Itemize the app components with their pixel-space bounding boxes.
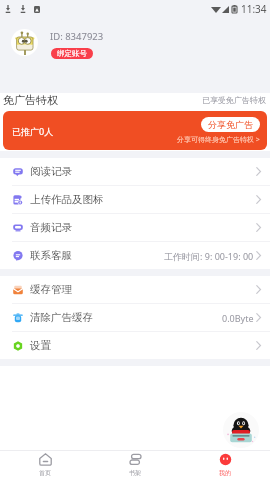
- button[interactable]: 阅读记录: [0, 158, 270, 185]
- button[interactable]: 已推广0人: [3, 111, 267, 150]
- staticText: 分享可得终身免广告特权 >: [177, 135, 260, 145]
- staticText: 0.0Byte: [222, 312, 254, 324]
- staticText: 设置: [30, 339, 51, 352]
- button[interactable]: 上传作品及图标: [0, 186, 270, 213]
- button[interactable]: 分享免广告: [201, 117, 260, 132]
- staticText: 工作时间: 9: 00-19: 00: [164, 250, 254, 262]
- button[interactable]: QQ 客服: [223, 412, 259, 448]
- staticText: 免广告特权: [3, 93, 58, 106]
- staticText: 已享受免广告特权: [202, 95, 266, 105]
- button[interactable]: 首页: [0, 450, 90, 480]
- staticText: 音频记录: [30, 221, 72, 234]
- staticText: 已推广0人: [12, 125, 54, 137]
- staticText: 书架: [129, 469, 141, 477]
- button[interactable]: 绑定账号: [51, 48, 93, 59]
- staticText: 分享免广告: [208, 119, 253, 130]
- button[interactable]: 清除广告缓存: [0, 304, 270, 331]
- staticText: 联系客服: [30, 249, 72, 262]
- staticText: 绑定账号: [57, 49, 87, 58]
- staticText: 上传作品及图标: [30, 193, 104, 206]
- staticText: ID: 8347923: [50, 30, 104, 43]
- button[interactable]: 缓存管理: [0, 276, 270, 303]
- button[interactable]: 书架: [90, 450, 180, 480]
- button[interactable]: 联系客服: [0, 242, 270, 269]
- staticText: 首页: [39, 469, 51, 477]
- button[interactable]: 我的: [180, 450, 270, 480]
- staticText: 清除广告缓存: [30, 311, 93, 324]
- staticText: 缓存管理: [30, 283, 72, 296]
- staticText: 11:34: [241, 2, 267, 16]
- staticText: 我的: [219, 469, 231, 477]
- staticText: 阅读记录: [30, 165, 72, 178]
- button[interactable]: 音频记录: [0, 214, 270, 241]
- button[interactable]: 设置: [0, 332, 270, 359]
- button[interactable]: 头像: [11, 29, 38, 56]
